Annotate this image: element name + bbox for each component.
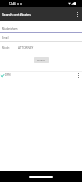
staticText: Search certificates: [2, 12, 31, 16]
button[interactable]: More options: [72, 7, 82, 21]
button[interactable]: DPN: [0, 71, 82, 79]
button[interactable]: Email: [0, 33, 82, 41]
staticText: ATTORNEY: [18, 46, 34, 50]
button[interactable]: Mudarisham: [0, 22, 82, 33]
staticText: Mode:: [2, 46, 10, 50]
button[interactable]: SEARCH: [34, 57, 49, 63]
staticText: 12:46: [9, 2, 16, 6]
staticText: SEARCH: [37, 59, 46, 62]
staticText: DPN: [5, 73, 11, 77]
staticText: Mudarisham: [2, 27, 18, 31]
staticText: Email: [2, 36, 9, 40]
